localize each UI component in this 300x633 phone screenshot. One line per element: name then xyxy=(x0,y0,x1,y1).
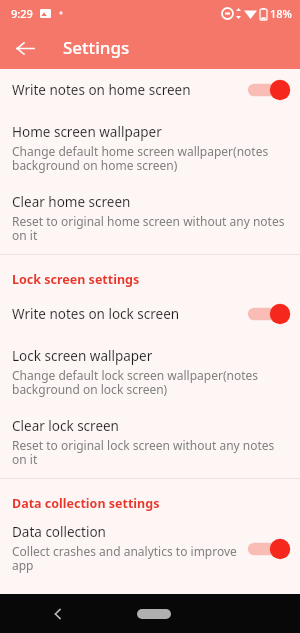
button[interactable]: Data collection xyxy=(0,520,300,584)
button[interactable]: Clear home screen xyxy=(0,184,300,254)
staticText: 9:29 xyxy=(11,6,33,21)
button[interactable]: Lock screen wallpaper xyxy=(0,337,300,408)
button[interactable]: Back xyxy=(43,599,73,629)
staticText: Home screen wallpaper xyxy=(12,123,162,141)
staticText: Settings xyxy=(63,36,130,59)
staticText: Data collection xyxy=(12,523,106,541)
button[interactable]: Toggle xyxy=(246,75,292,105)
staticText: Lock screen wallpaper xyxy=(12,347,153,365)
button[interactable]: Home xyxy=(137,609,171,619)
staticText: Data collection settings xyxy=(12,495,160,512)
button[interactable]: Write notes on home screen xyxy=(0,69,300,113)
staticText: 18% xyxy=(270,6,292,21)
staticText: Change default home screen wallpaper(not… xyxy=(12,143,292,174)
button[interactable]: Back xyxy=(8,31,42,65)
staticText: Write notes on lock screen xyxy=(12,305,180,323)
staticText: Reset to original home screen without an… xyxy=(12,213,292,244)
staticText: Change default lock screen wallpaper(not… xyxy=(12,367,292,398)
button[interactable]: Toggle xyxy=(246,534,292,564)
button[interactable]: Clear lock screen xyxy=(0,408,300,478)
staticText: Clear home screen xyxy=(12,193,131,211)
button[interactable]: Write notes on lock screen xyxy=(0,296,300,337)
staticText: Collect crashes and analytics to improve… xyxy=(12,543,242,574)
staticText: Reset to original lock screen without an… xyxy=(12,437,292,468)
staticText: Lock screen settings xyxy=(12,271,140,288)
button[interactable]: Home screen wallpaper xyxy=(0,113,300,184)
staticText: Write notes on home screen xyxy=(12,81,191,99)
staticText: Clear lock screen xyxy=(12,417,119,435)
button[interactable]: Toggle xyxy=(246,299,292,329)
